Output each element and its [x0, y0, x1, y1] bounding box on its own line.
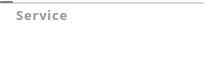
staticText: Service [16, 6, 69, 24]
